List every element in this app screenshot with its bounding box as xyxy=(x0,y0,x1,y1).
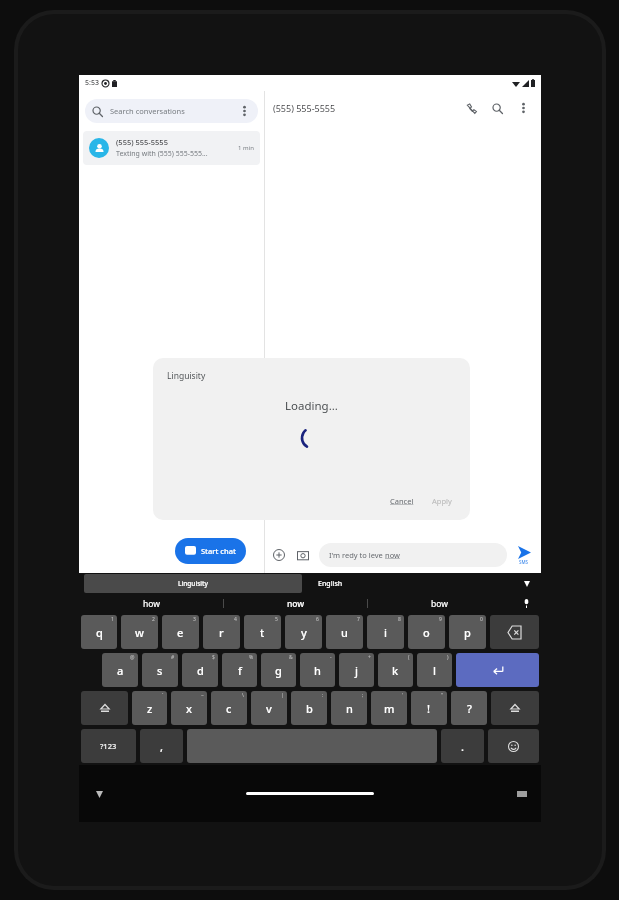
staticText: | xyxy=(281,692,284,699)
button[interactable]: g xyxy=(261,653,296,687)
button[interactable]: Send SMS xyxy=(513,546,535,565)
staticText: z xyxy=(147,701,153,716)
staticText: & xyxy=(289,654,293,661)
staticText: English xyxy=(318,579,343,589)
staticText: i xyxy=(384,625,387,640)
button[interactable]: , xyxy=(140,729,183,763)
button[interactable]: z xyxy=(132,691,167,725)
button[interactable]: Camera xyxy=(295,547,311,563)
button[interactable]: More options xyxy=(237,104,251,118)
staticText: f xyxy=(238,663,242,678)
button[interactable]: Modifier key xyxy=(491,691,539,725)
staticText: m xyxy=(384,701,395,716)
staticText: ?123 xyxy=(100,741,117,751)
staticText: x xyxy=(186,701,192,716)
button[interactable]: x xyxy=(171,691,207,725)
staticText: ' xyxy=(402,692,404,699)
button[interactable]: q xyxy=(81,615,117,649)
staticText: bow xyxy=(431,598,448,610)
button[interactable]: Hide keyboard xyxy=(93,788,105,800)
button[interactable]: Modifier key xyxy=(81,691,128,725)
button[interactable]: v xyxy=(251,691,287,725)
button[interactable]: English xyxy=(318,579,343,589)
staticText: 8 xyxy=(398,616,401,623)
staticText: 1 min xyxy=(238,144,254,152)
staticText: j xyxy=(355,663,358,678)
button[interactable]: (555) 555-5555 xyxy=(83,131,260,165)
button[interactable]: Attach xyxy=(271,547,287,563)
staticText: : xyxy=(322,692,324,699)
staticText: a xyxy=(117,663,124,678)
staticText: g xyxy=(275,663,282,678)
staticText: v xyxy=(266,701,272,716)
button[interactable]: i xyxy=(367,615,404,649)
button[interactable]: Search xyxy=(487,98,507,118)
button[interactable]: l xyxy=(417,653,452,687)
button[interactable]: Expand xyxy=(519,576,535,592)
staticText: , xyxy=(160,739,164,754)
staticText: p xyxy=(464,625,471,640)
staticText: $ xyxy=(212,654,215,661)
staticText: Loading... xyxy=(285,398,338,414)
button[interactable]: c xyxy=(211,691,247,725)
button[interactable]: Apply xyxy=(428,492,456,510)
staticText: Start chat xyxy=(201,546,236,556)
staticText: n xyxy=(346,701,353,716)
button[interactable]: Linguisity xyxy=(84,574,302,593)
staticText: h xyxy=(314,663,321,678)
staticText: @ xyxy=(130,654,135,661)
button[interactable]: Cancel xyxy=(386,492,418,510)
button[interactable]: Search conversations xyxy=(85,99,258,123)
button[interactable]: t xyxy=(244,615,281,649)
button[interactable]: h xyxy=(300,653,335,687)
button[interactable]: bow xyxy=(368,594,511,613)
button[interactable]: u xyxy=(326,615,363,649)
staticText: ! xyxy=(427,701,431,716)
staticText: - xyxy=(330,654,332,661)
staticText: Cancel xyxy=(390,496,414,506)
button[interactable]: s xyxy=(142,653,178,687)
button[interactable]: ! xyxy=(411,691,447,725)
button[interactable]: f xyxy=(222,653,257,687)
button[interactable]: Call xyxy=(461,98,481,118)
button[interactable]: y xyxy=(285,615,322,649)
staticText: r xyxy=(219,625,224,640)
button[interactable]: Emoji xyxy=(488,729,539,763)
button[interactable]: e xyxy=(162,615,199,649)
button[interactable]: r xyxy=(203,615,240,649)
staticText: + xyxy=(368,654,371,661)
button[interactable]: More options xyxy=(513,98,533,118)
button[interactable]: a xyxy=(102,653,138,687)
button[interactable]: j xyxy=(339,653,374,687)
button[interactable]: now xyxy=(224,594,367,613)
button[interactable]: n xyxy=(331,691,367,725)
button[interactable]: . xyxy=(441,729,484,763)
staticText: \ xyxy=(242,692,244,699)
button[interactable]: Start chat xyxy=(175,538,246,564)
button[interactable]: I'm redy to leve xyxy=(319,543,507,567)
button[interactable]: how xyxy=(79,594,223,613)
staticText: o xyxy=(423,625,430,640)
button[interactable]: Voice input xyxy=(511,594,541,613)
staticText: Texting with (555) 555-555... xyxy=(116,149,208,159)
button[interactable]: p xyxy=(449,615,486,649)
button[interactable]: d xyxy=(182,653,218,687)
button[interactable]: k xyxy=(378,653,413,687)
staticText: 7 xyxy=(357,616,360,623)
staticText: now xyxy=(385,550,400,560)
button[interactable]: ?123 xyxy=(81,729,136,763)
staticText: Linguisity xyxy=(167,370,206,382)
button[interactable]: w xyxy=(121,615,158,649)
staticText: e xyxy=(177,625,184,640)
button[interactable]: b xyxy=(291,691,327,725)
staticText: ) xyxy=(447,654,449,661)
staticText: ; xyxy=(362,692,364,699)
staticText: 1 xyxy=(111,616,114,623)
button[interactable]: Enter xyxy=(456,653,539,687)
button[interactable]: ? xyxy=(451,691,487,725)
button[interactable]: Modifier key xyxy=(490,615,539,649)
button[interactable]: o xyxy=(408,615,445,649)
button[interactable]: m xyxy=(371,691,407,725)
staticText: 4 xyxy=(234,616,237,623)
